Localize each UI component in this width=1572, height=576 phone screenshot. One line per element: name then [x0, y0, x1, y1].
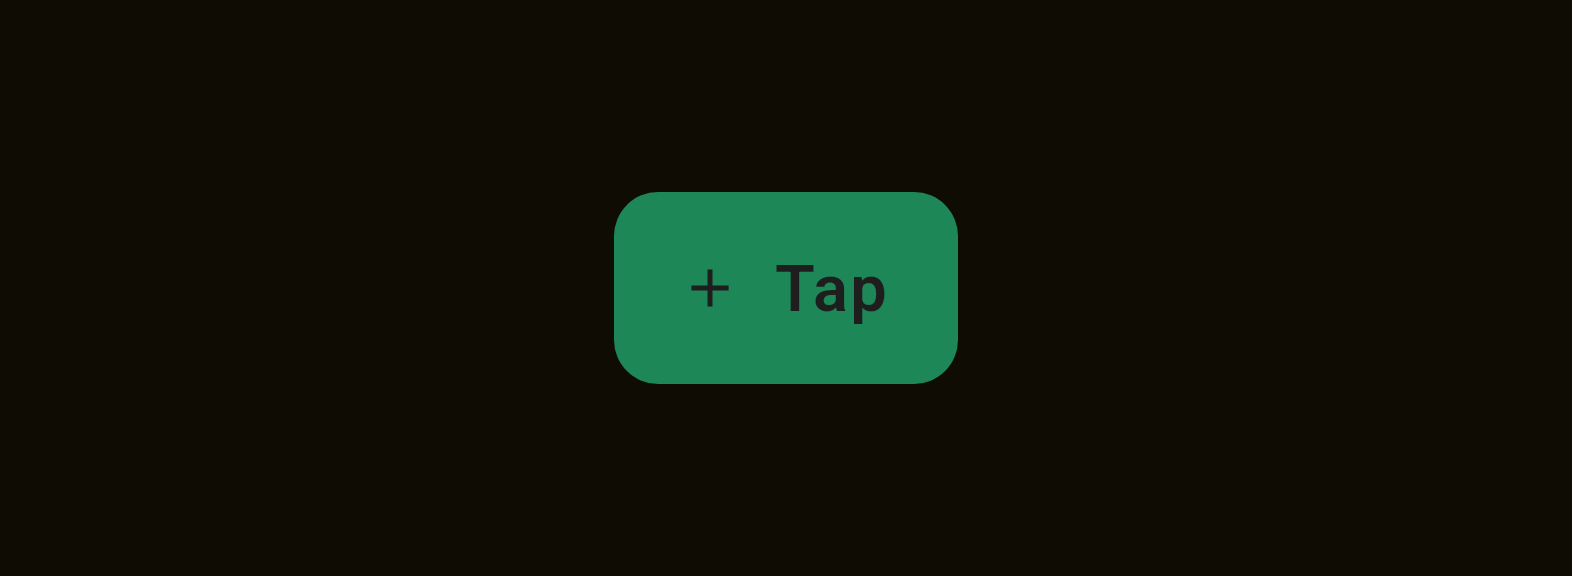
button[interactable]: Add Tap: [614, 192, 958, 384]
staticText: Tap: [775, 251, 890, 327]
